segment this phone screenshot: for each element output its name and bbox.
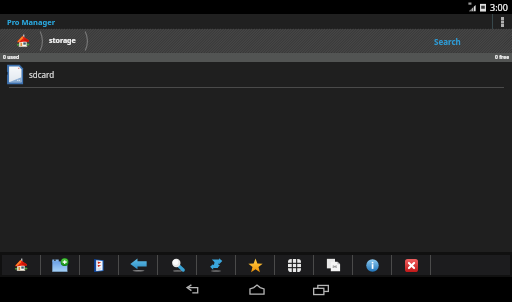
button[interactable]: Close xyxy=(392,255,430,275)
button[interactable]: Home xyxy=(234,277,280,302)
button[interactable]: Recent apps xyxy=(298,277,344,302)
button[interactable]: Info xyxy=(353,255,391,275)
button[interactable]: Home xyxy=(2,255,40,275)
button[interactable]: Search xyxy=(422,29,473,53)
staticText: Search xyxy=(434,36,461,47)
staticText: 0 free xyxy=(495,54,510,61)
button[interactable]: Bookmarks xyxy=(80,255,118,275)
staticText: 0 used xyxy=(3,54,20,61)
staticText: sdcard xyxy=(29,69,55,80)
staticText: Pro Manager xyxy=(7,17,55,27)
button[interactable]: More options xyxy=(493,14,512,29)
button[interactable]: New folder xyxy=(41,255,79,275)
staticText: 3:00 xyxy=(490,1,508,13)
button[interactable]: Back xyxy=(119,255,157,275)
button[interactable]: sdcard xyxy=(0,62,512,88)
button[interactable]: Move xyxy=(197,255,235,275)
button[interactable]: Home xyxy=(0,29,35,53)
button[interactable]: Grid view xyxy=(275,255,313,275)
button[interactable]: Copy xyxy=(314,255,352,275)
button[interactable]: Search xyxy=(158,255,196,275)
button[interactable]: Back xyxy=(170,277,216,302)
button[interactable]: storage xyxy=(45,29,80,53)
button[interactable]: Favourites xyxy=(236,255,274,275)
staticText: storage xyxy=(49,36,76,46)
